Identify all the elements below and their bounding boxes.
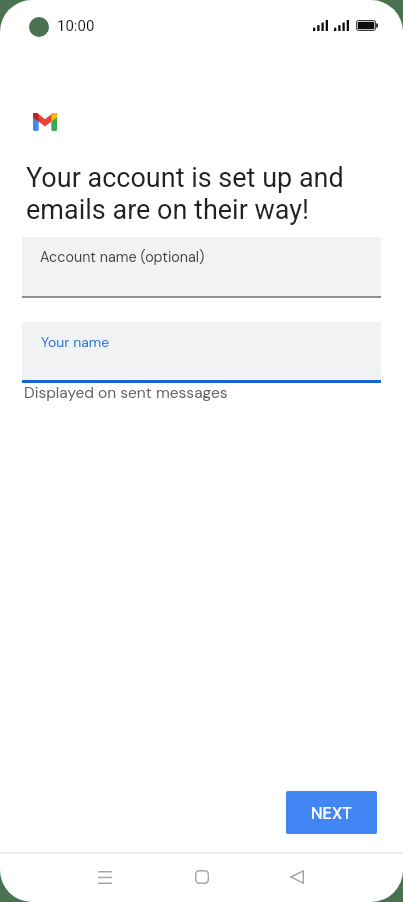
button[interactable]: NEXT — [286, 791, 377, 834]
staticText: 10:00 — [57, 17, 95, 35]
button[interactable]: Your name — [22, 322, 381, 380]
staticText: Your name — [41, 333, 110, 351]
staticText: Displayed on sent messages — [24, 383, 228, 403]
staticText: Account name (optional) — [40, 248, 205, 267]
button[interactable]: Back — [269, 853, 325, 901]
button[interactable]: Account name (optional) — [22, 237, 381, 296]
staticText: Your account is set up and emails are on… — [26, 162, 358, 226]
staticText: NEXT — [311, 803, 352, 824]
button[interactable]: Recent apps — [77, 853, 133, 901]
button[interactable]: Home — [174, 853, 230, 901]
